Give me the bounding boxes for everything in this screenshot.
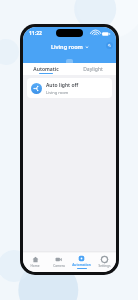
staticText: 11:22 bbox=[29, 30, 42, 37]
staticText: Living room bbox=[46, 90, 69, 95]
staticText: Living room bbox=[51, 43, 83, 50]
staticText: Automation bbox=[72, 263, 91, 267]
button[interactable]: Home bbox=[23, 252, 47, 272]
button[interactable] bbox=[66, 59, 73, 63]
button[interactable]: Automatic bbox=[23, 63, 69, 75]
staticText: Settings bbox=[98, 264, 111, 268]
button[interactable]: Auto light off bbox=[27, 78, 112, 98]
staticText: Daylight bbox=[83, 66, 103, 73]
button[interactable]: Living room bbox=[51, 43, 89, 50]
button[interactable]: Automation bbox=[70, 252, 93, 272]
button[interactable]: Search bbox=[106, 42, 113, 49]
staticText: Home bbox=[30, 264, 40, 268]
staticText: Automatic bbox=[33, 66, 59, 73]
button[interactable]: Camera bbox=[47, 252, 70, 272]
staticText: Camera bbox=[53, 264, 65, 268]
button[interactable]: Settings bbox=[93, 252, 116, 272]
staticText: Auto light off bbox=[46, 82, 79, 89]
button[interactable]: Daylight bbox=[69, 63, 116, 75]
